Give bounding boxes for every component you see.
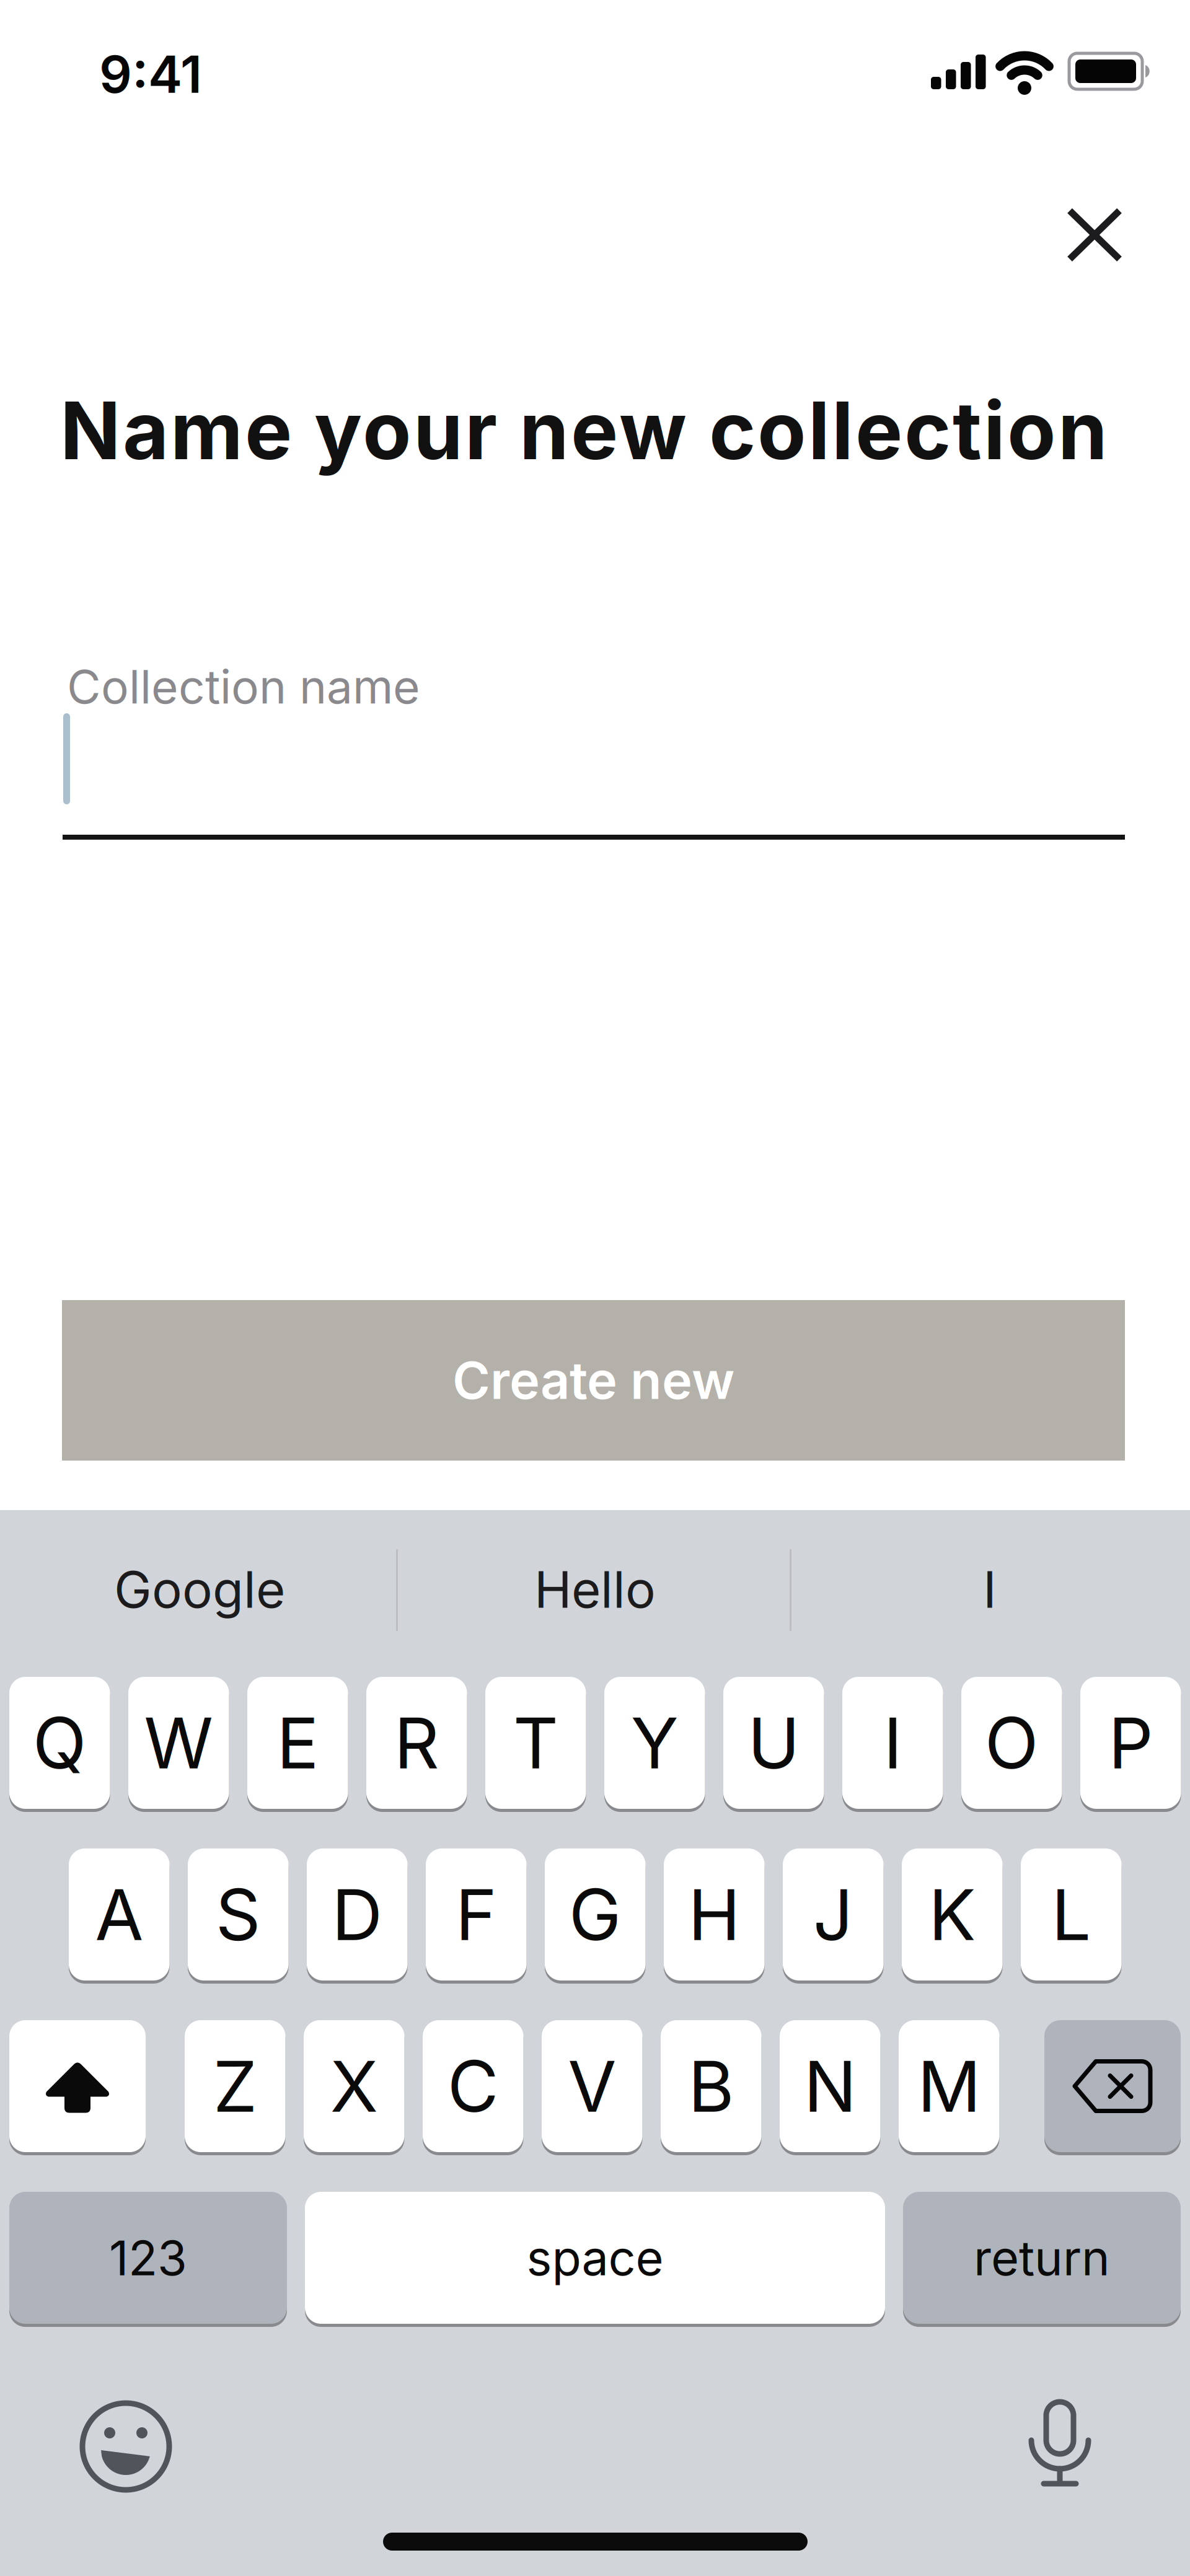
staticText: U bbox=[748, 1701, 800, 1784]
staticText: M bbox=[917, 2045, 981, 2128]
staticText: Collection name bbox=[67, 659, 420, 714]
button[interactable]: T bbox=[485, 1677, 586, 1809]
staticText: S bbox=[216, 1873, 261, 1956]
button[interactable]: 123 bbox=[9, 2192, 287, 2324]
button[interactable]: I bbox=[842, 1677, 943, 1809]
button[interactable] bbox=[1011, 2383, 1108, 2505]
staticText: C bbox=[447, 2045, 499, 2128]
button[interactable]: Create new bbox=[62, 1300, 1125, 1461]
button[interactable]: D bbox=[307, 1848, 408, 1980]
staticText: V bbox=[568, 2045, 616, 2128]
button[interactable]: S bbox=[188, 1848, 289, 1980]
staticText: 123 bbox=[109, 2230, 187, 2286]
staticText: Q bbox=[33, 1701, 87, 1784]
staticText: T bbox=[513, 1701, 558, 1784]
staticText: R bbox=[394, 1701, 439, 1784]
button[interactable]: L bbox=[1021, 1848, 1122, 1980]
staticText: Hello bbox=[534, 1560, 656, 1619]
button[interactable]: O bbox=[961, 1677, 1062, 1809]
button[interactable]: space bbox=[305, 2192, 885, 2324]
staticText: X bbox=[330, 2045, 378, 2128]
button[interactable] bbox=[1045, 186, 1144, 284]
staticText: P bbox=[1108, 1701, 1153, 1784]
button[interactable]: A bbox=[69, 1848, 170, 1980]
button[interactable]: H bbox=[664, 1848, 765, 1980]
button[interactable]: Q bbox=[9, 1677, 110, 1809]
button[interactable]: J bbox=[783, 1848, 884, 1980]
staticText: I bbox=[883, 1701, 902, 1784]
staticText: F bbox=[455, 1873, 497, 1956]
button[interactable]: F bbox=[426, 1848, 527, 1980]
button[interactable]: E bbox=[247, 1677, 348, 1809]
button[interactable]: N bbox=[780, 2020, 880, 2152]
button[interactable]: M bbox=[899, 2020, 999, 2152]
button[interactable]: B bbox=[661, 2020, 761, 2152]
staticText: E bbox=[277, 1701, 319, 1784]
button[interactable]: Y bbox=[604, 1677, 705, 1809]
button[interactable]: U bbox=[723, 1677, 824, 1809]
staticText: L bbox=[1051, 1873, 1091, 1956]
button[interactable]: C bbox=[423, 2020, 523, 2152]
button[interactable]: P bbox=[1080, 1677, 1181, 1809]
staticText: O bbox=[985, 1701, 1039, 1784]
button[interactable] bbox=[9, 2020, 146, 2152]
staticText: Name your new collection bbox=[60, 384, 1108, 477]
button[interactable] bbox=[61, 2382, 190, 2511]
staticText: I bbox=[983, 1560, 997, 1619]
staticText: return bbox=[974, 2230, 1110, 2286]
button[interactable]: X bbox=[304, 2020, 404, 2152]
staticText: H bbox=[688, 1873, 740, 1956]
button[interactable]: V bbox=[542, 2020, 642, 2152]
staticText: B bbox=[688, 2045, 734, 2128]
button[interactable] bbox=[1044, 2020, 1181, 2152]
staticText: D bbox=[332, 1873, 383, 1956]
staticText: space bbox=[527, 2230, 663, 2286]
button[interactable]: Z bbox=[185, 2020, 285, 2152]
button[interactable]: Hello bbox=[421, 1524, 769, 1655]
button[interactable]: Collection name bbox=[62, 648, 1125, 840]
button[interactable]: Google bbox=[26, 1524, 373, 1655]
staticText: J bbox=[813, 1873, 853, 1956]
staticText: K bbox=[929, 1873, 976, 1956]
button[interactable]: G bbox=[545, 1848, 646, 1980]
staticText: G bbox=[569, 1873, 622, 1956]
button[interactable]: K bbox=[902, 1848, 1003, 1980]
staticText: Create new bbox=[452, 1350, 734, 1411]
staticText: N bbox=[804, 2045, 856, 2128]
button[interactable]: R bbox=[366, 1677, 467, 1809]
staticText: Google bbox=[114, 1560, 285, 1619]
button[interactable]: I bbox=[816, 1524, 1163, 1655]
staticText: 9:41 bbox=[99, 44, 202, 104]
staticText: Y bbox=[631, 1701, 679, 1784]
staticText: W bbox=[144, 1701, 213, 1784]
button[interactable]: W bbox=[128, 1677, 229, 1809]
button[interactable]: return bbox=[903, 2192, 1181, 2324]
staticText: Z bbox=[213, 2045, 257, 2128]
staticText: A bbox=[95, 1873, 143, 1956]
